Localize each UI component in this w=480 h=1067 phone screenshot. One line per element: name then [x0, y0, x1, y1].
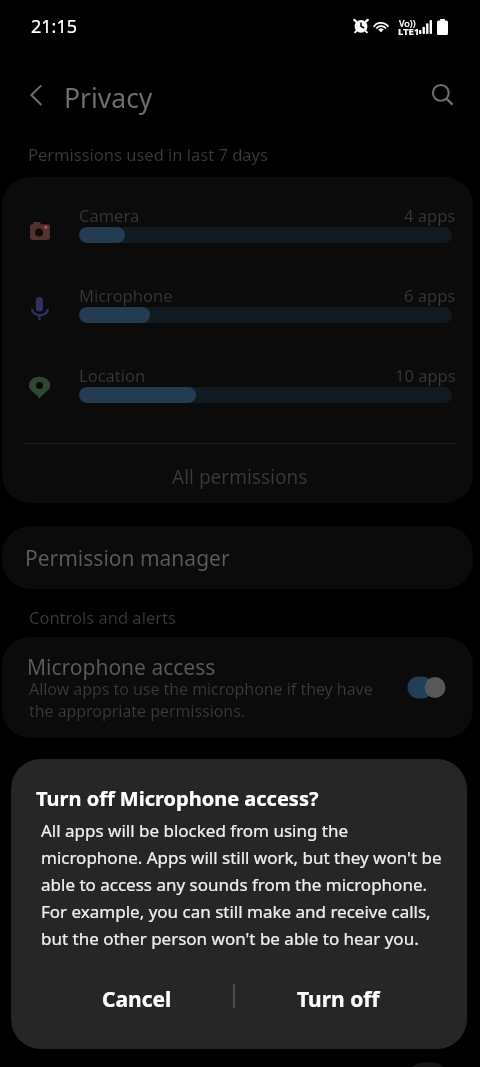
staticText: Privacy	[64, 80, 153, 116]
button[interactable]: Microphone access toggle	[405, 674, 448, 701]
button[interactable]: All permissions	[4, 447, 476, 506]
staticText: 21:15	[31, 14, 78, 39]
staticText: Cancel	[102, 985, 172, 1014]
button[interactable]	[4, 352, 476, 432]
button[interactable]: Permission manager	[2, 526, 473, 589]
staticText: LTE1	[398, 25, 420, 38]
staticText: Permission manager	[25, 544, 230, 573]
button[interactable]: Cancel	[40, 975, 234, 1023]
staticText: 10 apps	[395, 364, 456, 386]
staticText: 6 apps	[404, 284, 456, 306]
button[interactable]: Back	[14, 74, 62, 122]
staticText: Controls and alerts	[29, 606, 176, 628]
staticText: Vo))	[399, 17, 416, 29]
staticText: Turn off	[297, 985, 380, 1014]
button[interactable]: Turn off	[241, 975, 435, 1023]
staticText: All apps will be blocked from using the …	[41, 819, 453, 950]
staticText: All permissions	[172, 464, 308, 490]
staticText: Location	[79, 364, 146, 386]
staticText: Permissions used in last 7 days	[28, 143, 268, 165]
staticText: Microphone access	[27, 653, 216, 682]
staticText: Turn off Microphone access?	[36, 785, 319, 812]
staticText: Camera	[79, 204, 140, 226]
staticText: Allow apps to use the microphone if they…	[29, 678, 373, 722]
button[interactable]	[2, 637, 473, 738]
staticText: Microphone	[79, 284, 173, 306]
button[interactable]: Search	[417, 74, 465, 122]
staticText: 4 apps	[404, 204, 456, 226]
button[interactable]	[4, 192, 476, 272]
button[interactable]	[4, 272, 476, 352]
